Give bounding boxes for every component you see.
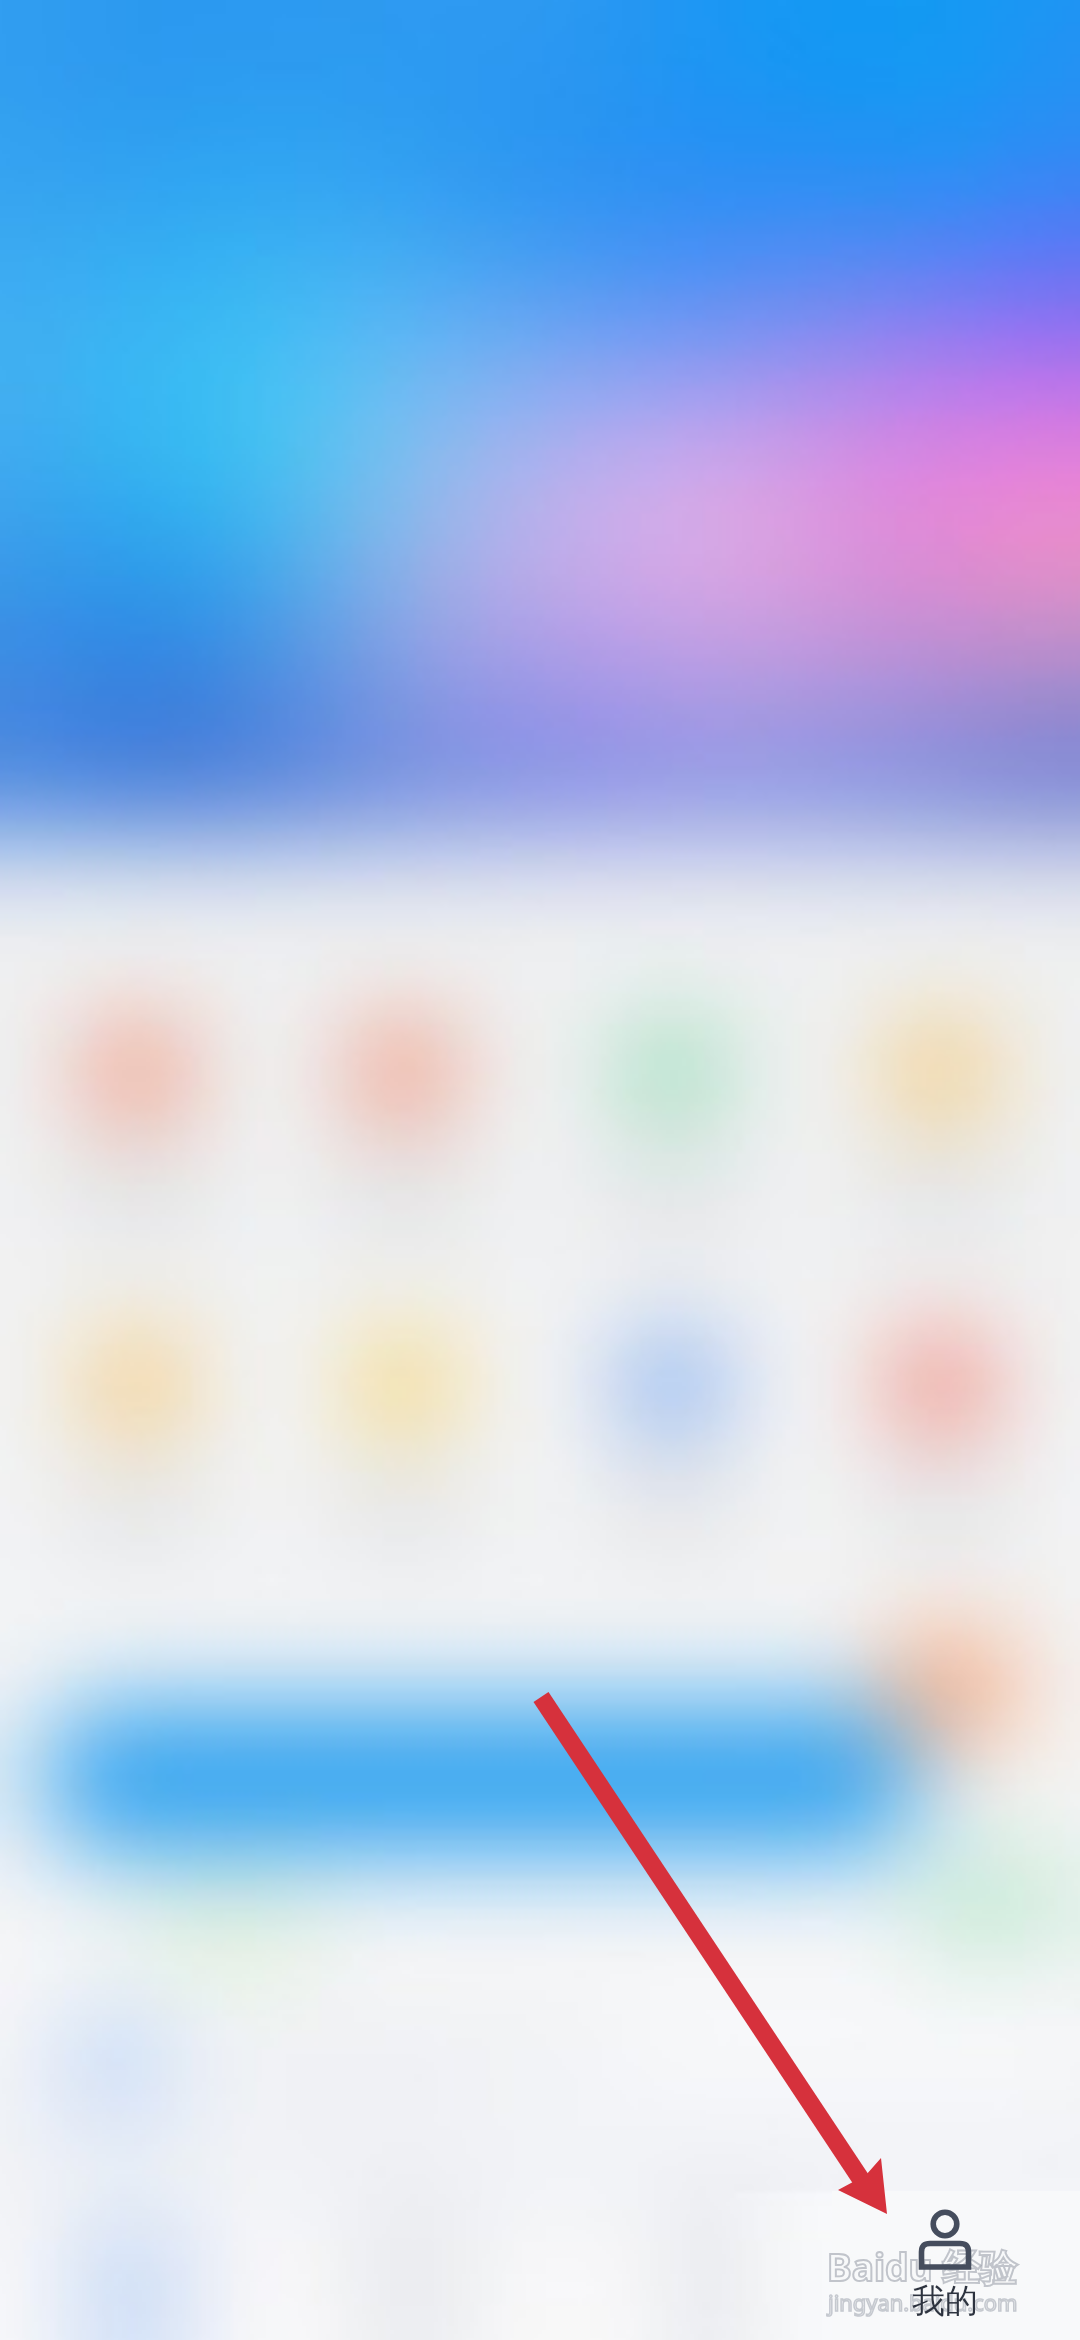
button[interactable]: 我的: [858, 2194, 1008, 2340]
staticText: 我的: [912, 2280, 978, 2322]
